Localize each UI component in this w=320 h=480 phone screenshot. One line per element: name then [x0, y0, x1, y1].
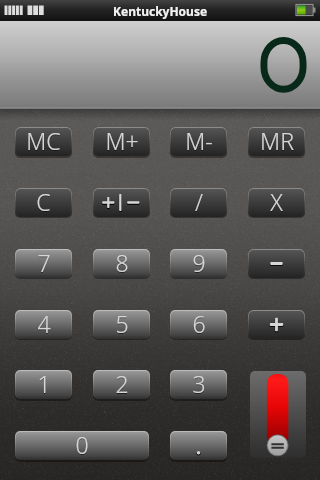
button[interactable]: 5 [93, 310, 150, 339]
staticText: 8 [115, 249, 129, 277]
staticText: MR [260, 127, 294, 155]
staticText: 9 [192, 249, 206, 277]
button[interactable]: 7 [15, 249, 72, 278]
staticText: 8 [115, 249, 129, 276]
staticText: X [270, 188, 283, 216]
button[interactable]: 8 [93, 249, 150, 278]
staticText: M- [185, 127, 213, 154]
staticText: 3 [192, 370, 206, 398]
button[interactable]: MC [15, 127, 72, 156]
button[interactable]: 0 [15, 431, 149, 460]
button[interactable]: 2 [93, 370, 150, 399]
staticText: 7 [37, 249, 51, 277]
button[interactable]: Plus [248, 310, 305, 339]
staticText: 5 [115, 310, 129, 337]
staticText: / [195, 188, 203, 216]
staticText: C [36, 188, 51, 216]
staticText: MC [26, 127, 61, 154]
staticText: KentuckyHouse [113, 3, 208, 19]
staticText: 7 [37, 249, 51, 276]
staticText: M+ [105, 127, 139, 154]
button[interactable]: 1 [15, 370, 72, 399]
staticText: 5 [115, 310, 129, 338]
staticText: X [270, 188, 283, 215]
staticText: / [195, 188, 203, 215]
staticText: 9 [192, 249, 206, 276]
button[interactable]: MR [248, 127, 305, 156]
button[interactable]: Decimal point [170, 431, 227, 460]
staticText: 6 [192, 310, 206, 337]
button[interactable]: 4 [15, 310, 72, 339]
staticText: 1 [37, 370, 51, 398]
button[interactable]: C [15, 188, 72, 217]
staticText: 4 [37, 310, 51, 337]
staticText: MR [260, 127, 294, 154]
button[interactable]: M+ [93, 127, 150, 156]
staticText: 2 [115, 370, 129, 398]
button[interactable]: 9 [170, 249, 227, 278]
staticText: M- [185, 127, 213, 155]
button[interactable]: 6 [170, 310, 227, 339]
staticText: 2 [115, 370, 129, 397]
button[interactable]: Plus minus [93, 188, 150, 217]
staticText: M+ [105, 127, 139, 155]
button[interactable]: M- [170, 127, 227, 156]
staticText: 0 [75, 431, 89, 459]
staticText: C [36, 188, 51, 215]
staticText: 0 [75, 431, 89, 458]
staticText: 3 [192, 370, 206, 397]
button[interactable]: Equals [250, 371, 306, 458]
staticText: MC [26, 127, 61, 155]
staticText: 6 [192, 310, 206, 338]
staticText: 4 [37, 310, 51, 338]
button[interactable]: 3 [170, 370, 227, 399]
staticText: 1 [37, 370, 51, 397]
button[interactable]: / [170, 188, 227, 217]
button[interactable]: X [248, 188, 305, 217]
button[interactable]: Minus [248, 249, 305, 278]
